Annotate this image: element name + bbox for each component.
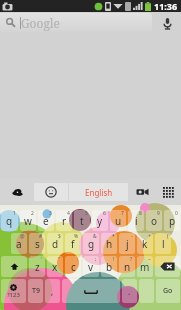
button[interactable]: x bbox=[47, 256, 63, 277]
button[interactable]: s bbox=[29, 233, 45, 254]
button[interactable]: Google bbox=[0, 13, 152, 32]
button[interactable]: i bbox=[128, 210, 144, 231]
button[interactable]: h bbox=[101, 233, 117, 254]
staticText: + bbox=[148, 233, 151, 240]
staticText: u bbox=[115, 214, 122, 228]
button[interactable]: Backspace bbox=[155, 256, 180, 277]
staticText: . bbox=[128, 286, 131, 297]
button[interactable]: Space bbox=[62, 279, 120, 303]
button[interactable]: Voice search bbox=[153, 12, 181, 34]
button[interactable]: v bbox=[83, 256, 99, 277]
staticText: r bbox=[62, 214, 67, 228]
staticText: l bbox=[162, 237, 165, 251]
staticText: ?123 bbox=[7, 291, 20, 299]
staticText: g bbox=[88, 237, 95, 251]
button[interactable]: Smiley bbox=[139, 279, 154, 303]
staticText: i bbox=[135, 214, 138, 228]
staticText: 5 bbox=[85, 210, 88, 217]
button[interactable]: k bbox=[137, 233, 153, 254]
button[interactable]: r bbox=[56, 210, 72, 231]
button[interactable]: Period bbox=[122, 279, 137, 303]
staticText: ? bbox=[130, 256, 133, 263]
staticText: English bbox=[85, 187, 113, 198]
staticText: ' bbox=[41, 256, 43, 263]
button[interactable]: Keypad bbox=[155, 179, 181, 205]
button[interactable]: m bbox=[137, 256, 153, 277]
staticText: Go bbox=[163, 286, 173, 296]
staticText: n bbox=[124, 260, 131, 274]
button[interactable]: q bbox=[1, 210, 18, 231]
staticText: x bbox=[52, 260, 58, 274]
staticText: ~ bbox=[148, 256, 151, 263]
staticText: , bbox=[51, 286, 54, 297]
button[interactable]: Shift bbox=[1, 256, 27, 277]
staticText: # bbox=[39, 233, 43, 240]
button[interactable]: p bbox=[164, 210, 180, 231]
button[interactable]: t bbox=[74, 210, 90, 231]
button[interactable]: d bbox=[47, 233, 63, 254]
staticText: 2 bbox=[31, 210, 34, 217]
staticText: % bbox=[74, 233, 79, 240]
staticText: $ bbox=[58, 233, 61, 240]
button[interactable]: u bbox=[110, 210, 126, 231]
staticText: 0 bbox=[175, 210, 178, 217]
staticText: v bbox=[88, 260, 94, 274]
staticText: ( bbox=[167, 233, 169, 240]
staticText: ! bbox=[113, 256, 115, 263]
staticText: 4 bbox=[67, 210, 70, 217]
staticText: ; bbox=[95, 256, 97, 263]
staticText: c bbox=[71, 260, 76, 274]
staticText: 3 bbox=[49, 210, 52, 217]
staticText: T9 bbox=[32, 286, 40, 296]
staticText: 1 bbox=[13, 210, 16, 217]
staticText: e bbox=[43, 214, 49, 228]
staticText: a bbox=[16, 237, 22, 251]
button[interactable]: T9 bbox=[28, 279, 43, 303]
button[interactable]: c bbox=[65, 256, 81, 277]
button[interactable]: a bbox=[11, 233, 27, 254]
button[interactable]: n bbox=[119, 256, 135, 277]
button[interactable]: z bbox=[29, 256, 45, 277]
button[interactable]: b bbox=[101, 256, 117, 277]
staticText: b bbox=[106, 260, 113, 274]
button[interactable]: Camera bbox=[129, 179, 155, 205]
button[interactable]: o bbox=[146, 210, 162, 231]
staticText: * bbox=[112, 233, 115, 240]
button[interactable]: w bbox=[20, 210, 36, 231]
staticText: h bbox=[106, 237, 113, 251]
staticText: Google bbox=[21, 15, 61, 31]
button[interactable]: Symbols bbox=[1, 279, 26, 303]
button[interactable]: l bbox=[155, 233, 171, 254]
staticText: y bbox=[97, 214, 103, 228]
staticText: & bbox=[93, 233, 97, 240]
staticText: - bbox=[131, 233, 133, 240]
button[interactable]: Comma bbox=[45, 279, 60, 303]
staticText: 11:36 bbox=[154, 0, 178, 12]
staticText: @ bbox=[20, 233, 25, 240]
button[interactable]: English bbox=[69, 183, 128, 201]
button[interactable]: j bbox=[119, 233, 135, 254]
staticText: t bbox=[80, 214, 84, 228]
staticText: 9 bbox=[157, 210, 160, 217]
staticText: o bbox=[151, 214, 158, 228]
staticText: 8 bbox=[139, 210, 142, 217]
button[interactable]: g bbox=[83, 233, 99, 254]
button[interactable]: y bbox=[92, 210, 108, 231]
staticText: d bbox=[52, 237, 59, 251]
button[interactable]: e bbox=[38, 210, 54, 231]
staticText: w bbox=[24, 214, 32, 228]
button[interactable]: Emoji bbox=[34, 183, 68, 201]
staticText: 7 bbox=[121, 210, 124, 217]
staticText: p bbox=[169, 214, 176, 228]
staticText: j bbox=[126, 237, 129, 251]
staticText: q bbox=[6, 214, 13, 228]
staticText: f bbox=[71, 237, 75, 251]
button[interactable]: f bbox=[65, 233, 81, 254]
button[interactable]: Go bbox=[156, 279, 180, 303]
staticText: z bbox=[35, 260, 40, 274]
button[interactable]: Theme bbox=[0, 179, 34, 205]
staticText: k bbox=[142, 237, 148, 251]
staticText: : bbox=[77, 256, 79, 263]
staticText: s bbox=[35, 237, 40, 251]
staticText: " bbox=[58, 256, 61, 263]
